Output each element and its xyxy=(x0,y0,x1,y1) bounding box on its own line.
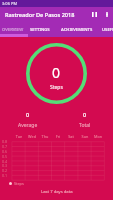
button[interactable]: SETTINGS xyxy=(25,22,54,37)
staticText: USEFUL xyxy=(102,27,113,33)
button[interactable]: ACHIEVEMENTS xyxy=(54,22,99,37)
staticText: Thu xyxy=(39,134,51,139)
staticText: 0.4 xyxy=(2,159,8,164)
staticText: 0.1 xyxy=(2,173,8,178)
staticText: 0.3 xyxy=(2,163,8,168)
staticText: 0.5 xyxy=(2,154,8,159)
staticText: 0 xyxy=(52,63,61,82)
staticText: Average xyxy=(18,122,38,129)
button[interactable]: More options xyxy=(101,7,113,22)
staticText: 3:06 PM xyxy=(2,1,18,6)
staticText: 0.2 xyxy=(2,168,8,173)
button[interactable]: OVERVIEW xyxy=(0,22,25,37)
staticText: Fri xyxy=(52,134,64,139)
staticText: 0 xyxy=(83,111,87,118)
staticText: SETTINGS xyxy=(30,27,50,33)
staticText: 0.8 xyxy=(2,139,8,144)
staticText: Sun xyxy=(79,134,91,139)
staticText: Steps xyxy=(50,84,63,91)
button[interactable]: Pause xyxy=(88,7,101,22)
staticText: Wed xyxy=(26,134,38,139)
button[interactable]: USEFUL xyxy=(99,22,113,37)
staticText: 0.7 xyxy=(2,144,8,149)
staticText: Mon xyxy=(92,134,104,139)
staticText: Total xyxy=(79,122,91,129)
staticText: ACHIEVEMENTS xyxy=(61,27,93,33)
staticText: Steps xyxy=(14,181,24,186)
staticText: 0 xyxy=(26,111,30,118)
staticText: Last 7 days data xyxy=(41,189,73,195)
staticText: Rastreador De Pasos 2018 xyxy=(5,11,88,19)
staticText: Tue xyxy=(13,134,25,139)
staticText: Sat xyxy=(65,134,77,139)
staticText: 0.6 xyxy=(2,149,8,154)
staticText: OVERVIEW xyxy=(2,27,24,33)
